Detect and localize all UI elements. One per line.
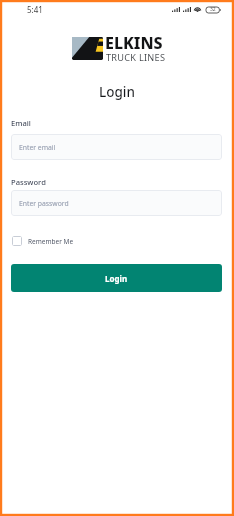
staticText: 32 <box>210 6 216 13</box>
button[interactable]: Remember Me <box>10 234 76 248</box>
staticText: Email <box>11 118 31 128</box>
staticText: 5:41 <box>27 4 43 15</box>
button[interactable]: Enter email <box>11 134 222 160</box>
staticText: TRUCK LINES <box>106 51 166 64</box>
button[interactable]: Enter password <box>11 190 222 216</box>
button[interactable]: Login <box>11 264 222 292</box>
staticText: Enter password <box>19 199 69 208</box>
staticText: Login <box>105 273 128 284</box>
staticText: Login <box>99 83 135 101</box>
staticText: Remember Me <box>28 237 74 246</box>
staticText: Enter email <box>19 143 56 152</box>
staticText: ELKINS <box>105 32 163 54</box>
staticText: Password <box>11 177 46 187</box>
